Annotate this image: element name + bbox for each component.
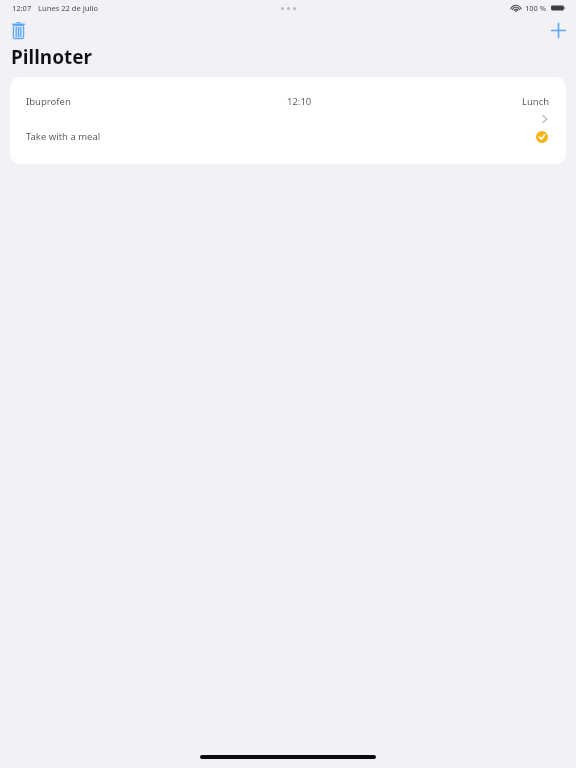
button[interactable]: Add bbox=[546, 18, 570, 42]
staticText: 12:10 bbox=[287, 95, 312, 108]
button[interactable]: Taken bbox=[535, 130, 548, 143]
staticText: 100 % bbox=[525, 3, 547, 13]
staticText: Lunch bbox=[522, 95, 550, 108]
staticText: Ibuprofen bbox=[26, 95, 71, 108]
button[interactable]: Delete bbox=[6, 18, 30, 42]
button[interactable]: Ibuprofen bbox=[10, 77, 566, 164]
staticText: Take with a meal bbox=[26, 130, 101, 143]
staticText: Lunes 22 de julio bbox=[38, 3, 99, 13]
staticText: Pillnoter bbox=[11, 44, 93, 70]
staticText: 12:07 bbox=[12, 3, 32, 13]
